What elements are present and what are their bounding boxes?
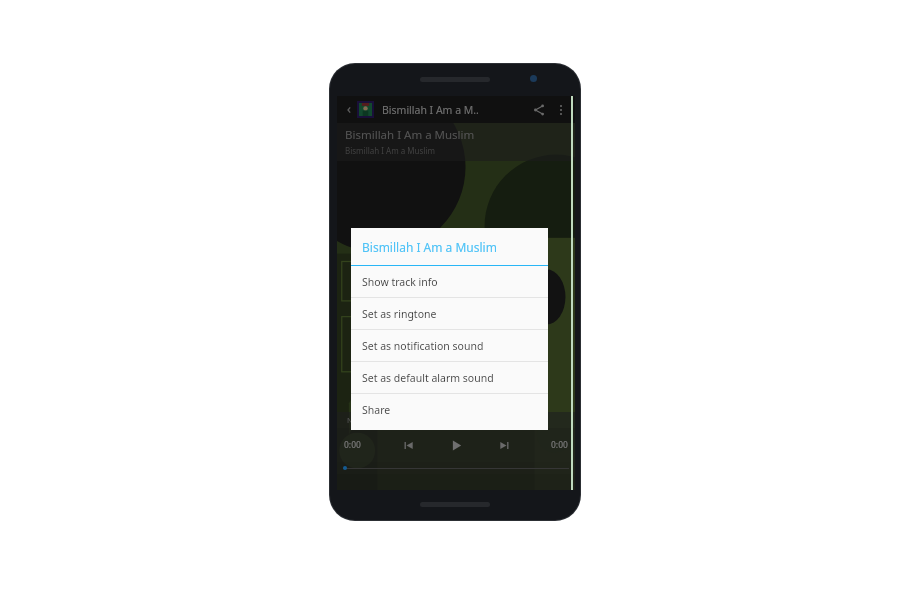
staticText: Set as default alarm sound	[362, 371, 494, 385]
button[interactable]: Navigate up	[341, 98, 357, 122]
staticText: Share	[362, 403, 391, 417]
staticText: Bismillah I Am a M..	[382, 103, 527, 117]
staticText: 0:00	[344, 439, 361, 451]
button[interactable]: Next	[491, 432, 517, 458]
button[interactable]	[359, 103, 372, 116]
staticText: No Track	[347, 415, 378, 425]
button[interactable]: Set as default alarm sound	[351, 362, 548, 393]
staticText: Bismillah I Am a Muslim	[345, 127, 475, 143]
button[interactable]	[337, 462, 575, 474]
staticText: Show track info	[362, 275, 438, 289]
button[interactable]: Set as notification sound	[351, 330, 548, 361]
button[interactable]: Play	[443, 432, 469, 458]
button[interactable]: Share	[351, 394, 548, 425]
staticText: Bismillah I Am a Muslim	[345, 145, 435, 156]
button[interactable]: Set as ringtone	[351, 298, 548, 329]
button[interactable]: More options	[551, 98, 571, 122]
button[interactable]: Show track info	[351, 266, 548, 297]
staticText: Set as ringtone	[362, 307, 437, 321]
staticText: Bismillah I Am a Muslim	[362, 239, 497, 255]
staticText: Set as notification sound	[362, 339, 484, 353]
staticText: 0:00	[551, 439, 568, 451]
button[interactable]: Previous	[395, 432, 421, 458]
button[interactable]: Share	[527, 98, 551, 122]
